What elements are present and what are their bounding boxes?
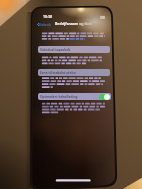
button[interactable]: Optimised charging, on: [99, 94, 110, 100]
button[interactable]: Evne til makslot ytelse: [38, 69, 110, 76]
button[interactable]: Back: [37, 21, 51, 27]
staticText: Gebruk: [39, 22, 51, 27]
staticText: Voksduel tapasbelt: [40, 48, 71, 52]
other: Battery: [100, 16, 105, 19]
staticText: 10:38: [43, 14, 52, 19]
other: Back: [37, 23, 39, 26]
staticText: Bedrijfsnaam og tied: [55, 21, 92, 26]
staticText: Optimalert behoflading: [40, 95, 78, 99]
button[interactable]: Optimalert behoflading: [38, 93, 111, 100]
staticText: Evne til makslot ytelse: [40, 71, 76, 75]
button[interactable]: Voksduel tapasbelt: [38, 46, 110, 53]
